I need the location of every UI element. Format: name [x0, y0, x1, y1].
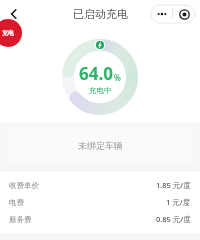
button[interactable]: Close — [173, 5, 195, 23]
staticText: 1 元/度 — [166, 197, 191, 207]
staticText: 64.0 — [79, 62, 113, 85]
staticText: 充电中 — [89, 86, 112, 95]
button[interactable]: Back — [2, 2, 26, 26]
staticText: 0.85 元/度 — [156, 214, 191, 224]
staticText: 未绑定车辆 — [78, 140, 123, 151]
staticText: % — [114, 72, 121, 83]
button[interactable]: 服务费 — [9, 214, 191, 224]
button[interactable]: Logo — [0, 19, 22, 47]
button[interactable]: 电费 — [9, 197, 191, 207]
staticText: 服务费 — [9, 215, 32, 224]
staticText: 收费单价 — [9, 181, 39, 190]
staticText: 电费 — [9, 198, 24, 207]
button[interactable]: 收费单价 — [9, 180, 191, 190]
staticText: 1.85 元/度 — [156, 180, 191, 190]
staticText: 已启动充电 — [73, 7, 128, 21]
button[interactable]: 未绑定车辆 — [8, 128, 192, 163]
button[interactable]: More — [151, 5, 172, 23]
staticText: 充电 — [2, 29, 14, 37]
